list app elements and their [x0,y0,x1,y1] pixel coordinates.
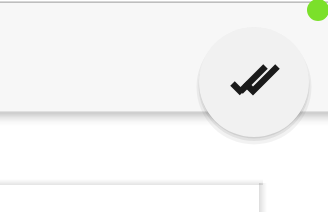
button[interactable]: Mark all as done [199,27,309,137]
